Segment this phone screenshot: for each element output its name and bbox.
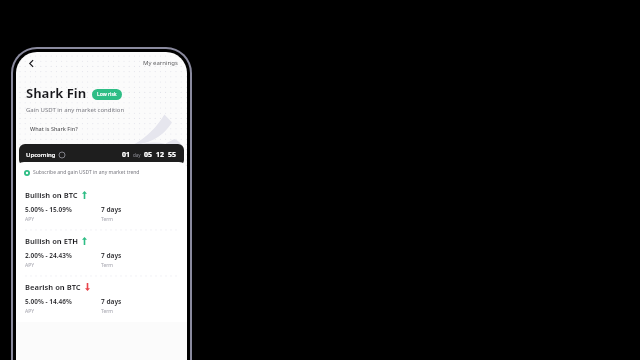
staticText: Bullish on BTC — [25, 190, 78, 200]
button[interactable]: What is Shark Fin? — [26, 123, 78, 134]
staticText: APY — [25, 308, 35, 315]
staticText: 7 days — [101, 297, 122, 306]
staticText: What is Shark Fin? — [30, 125, 78, 132]
staticText: 7 days — [101, 205, 122, 214]
staticText: 2.00% - 24.43% — [25, 251, 72, 260]
staticText: Bullish on ETH — [25, 236, 78, 246]
button[interactable]: Upcoming — [19, 144, 184, 166]
staticText: Upcoming — [26, 151, 56, 159]
staticText: Low risk — [97, 91, 117, 98]
button[interactable]: Back — [22, 54, 40, 72]
staticText: Bearish on BTC — [25, 282, 81, 292]
staticText: Subscribe and gain USDT in any market tr… — [33, 169, 140, 176]
staticText: 5.00% - 14.46% — [25, 297, 72, 306]
staticText: My earnings — [143, 59, 178, 67]
staticText: Term — [101, 308, 113, 315]
staticText: APY — [25, 262, 35, 269]
staticText: Shark Fin — [26, 84, 87, 102]
staticText: Gain USDT in any market condition — [26, 106, 125, 114]
staticText: 05 — [144, 150, 153, 160]
staticText: Term — [101, 262, 113, 269]
staticText: 55 — [168, 150, 177, 160]
staticText: 5.00% - 15.09% — [25, 205, 72, 214]
staticText: day — [133, 152, 141, 158]
staticText: 01 — [122, 150, 131, 160]
button[interactable]: Bullish on ETH — [16, 231, 187, 276]
staticText: APY — [25, 216, 35, 223]
button[interactable]: My earnings — [140, 57, 181, 69]
staticText: Term — [101, 216, 113, 223]
button[interactable]: Bearish on BTC — [16, 277, 187, 322]
staticText: 12 — [156, 150, 165, 160]
staticText: 7 days — [101, 251, 122, 260]
button[interactable]: Bullish on BTC — [16, 185, 187, 230]
